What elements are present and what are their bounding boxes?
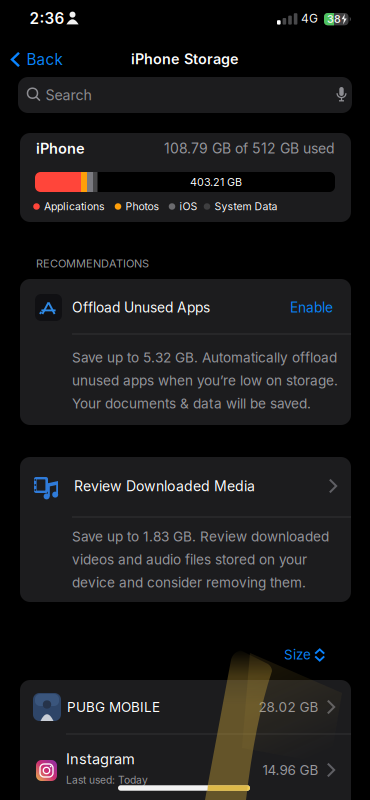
staticText: 38 <box>327 13 341 25</box>
staticText: Save up to 1.83 GB. Review downloaded vi… <box>72 529 329 590</box>
staticText: PUBG MOBILE <box>67 699 160 715</box>
staticText: 14.96 GB <box>262 762 318 778</box>
staticText: System Data <box>214 200 277 213</box>
staticText: Applications <box>44 200 105 213</box>
staticText: 4G <box>301 11 318 26</box>
staticText: iOS <box>179 200 197 213</box>
staticText: Review Downloaded Media <box>74 478 255 494</box>
staticText: Instagram <box>66 750 135 767</box>
staticText: 108.79 GB of 512 GB used <box>164 140 335 157</box>
staticText: 28.02 GB <box>258 699 318 715</box>
staticText: 403.21 GB <box>190 176 242 188</box>
staticText: 2:36 <box>29 9 64 27</box>
staticText: iPhone <box>36 140 85 157</box>
staticText: Last used: Today <box>66 774 148 786</box>
staticText: RECOMMENDATIONS <box>36 257 149 270</box>
staticText: Size <box>284 647 311 662</box>
staticText: Photos <box>125 200 159 213</box>
staticText: Enable <box>290 299 333 316</box>
staticText: Search <box>45 87 91 103</box>
staticText: Back <box>26 51 62 68</box>
staticText: iPhone Storage <box>131 50 239 67</box>
staticText: Save up to 5.32 GB. Automatically offloa… <box>72 350 338 411</box>
staticText: Offload Unused Apps <box>72 299 210 316</box>
